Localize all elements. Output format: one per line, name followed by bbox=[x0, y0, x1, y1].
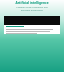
staticText: Powerful code completion and excellent p… bbox=[16, 6, 48, 12]
staticText: Artificial intelligence bbox=[15, 1, 49, 5]
